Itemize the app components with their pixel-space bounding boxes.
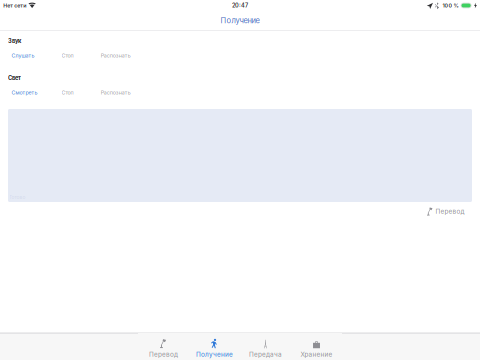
staticText: Перевод [149,351,178,358]
staticText: Получение [196,351,233,358]
button[interactable]: Получение [189,333,240,360]
button[interactable]: Распознать [99,51,133,60]
staticText: Распознать [101,52,131,59]
staticText: Хранение [300,351,332,358]
staticText: Стоп [61,89,73,96]
button[interactable]: Смотреть [9,88,39,97]
staticText: 100 % [442,2,458,9]
button[interactable]: Стоп [59,51,75,60]
staticText: Перевод [435,208,464,215]
staticText: Получение [220,16,259,25]
staticText: Распознать [101,89,131,96]
staticText: Готово [10,194,26,200]
staticText: Передача [249,351,282,358]
staticText: Смотреть [11,89,37,96]
button[interactable]: Стоп [59,88,75,97]
staticText: 20:47 [232,2,248,9]
staticText: Стоп [61,52,73,59]
staticText: Слушать [11,52,34,59]
staticText: Свет [8,74,21,81]
button[interactable]: Перевод [138,333,189,360]
button[interactable]: Перевод [425,206,465,217]
staticText: Нет сети [3,2,26,9]
button[interactable]: Хранение [291,333,342,360]
staticText: Звук [8,37,21,44]
button[interactable]: Передача [240,333,291,360]
button[interactable]: Распознать [99,88,133,97]
button[interactable]: Слушать [9,51,36,60]
